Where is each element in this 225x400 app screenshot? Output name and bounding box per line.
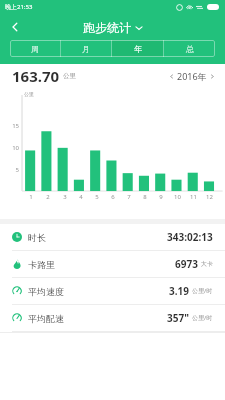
staticText: 公里 — [24, 91, 34, 97]
staticText: 12 — [206, 193, 213, 201]
other: Previous year — [169, 74, 174, 79]
staticText: 总 — [186, 44, 194, 54]
staticText: 7 — [127, 193, 131, 201]
other: Next year — [210, 74, 215, 79]
staticText: 9 — [159, 193, 163, 201]
staticText: 343:02:13 — [167, 230, 213, 244]
staticText: 2016年 — [177, 70, 207, 82]
button[interactable]: 平均配速 — [0, 305, 225, 331]
staticText: 大卡 — [201, 260, 213, 268]
button[interactable]: Previous year — [169, 70, 215, 82]
staticText: 周 — [31, 44, 39, 54]
staticText: 3 — [63, 193, 67, 201]
staticText: 4 — [79, 193, 83, 201]
staticText: 年 — [134, 44, 142, 54]
staticText: 1 — [29, 193, 33, 201]
staticText: 晚上21:53 — [5, 3, 33, 11]
staticText: 163.70 — [12, 66, 60, 86]
staticText: 公里/时 — [192, 314, 213, 322]
staticText: 时长 — [28, 232, 46, 243]
staticText: 卡路里 — [28, 259, 55, 270]
staticText: 3.19 — [169, 284, 189, 298]
staticText: 平均配速 — [28, 313, 64, 324]
staticText: 平均速度 — [28, 286, 64, 297]
button[interactable]: 平均速度 — [0, 278, 225, 304]
button[interactable]: 卡路里 — [0, 251, 225, 277]
button[interactable]: 月 — [61, 40, 111, 57]
staticText: 5 — [6, 166, 19, 174]
button[interactable]: 总 — [164, 40, 215, 57]
staticText: 5 — [95, 193, 99, 201]
button[interactable]: 周 — [10, 40, 60, 57]
staticText: 8 — [143, 193, 147, 201]
staticText: 跑步统计 — [83, 20, 131, 35]
button[interactable]: 跑步统计 — [83, 20, 143, 35]
staticText: 月 — [82, 44, 90, 54]
staticText: 公里/时 — [192, 287, 213, 295]
staticText: 11 — [190, 193, 197, 201]
staticText: 10 — [174, 193, 181, 201]
staticText: 公里 — [63, 72, 76, 80]
button[interactable]: 时长 — [0, 224, 225, 250]
staticText: 2 — [46, 193, 50, 201]
staticText: 15 — [6, 122, 19, 130]
button[interactable]: 年 — [112, 40, 163, 57]
button[interactable]: Back — [0, 14, 30, 40]
staticText: 357" — [167, 311, 189, 325]
staticText: 6973 — [175, 257, 198, 271]
staticText: 10 — [6, 144, 19, 152]
staticText: 6 — [111, 193, 115, 201]
